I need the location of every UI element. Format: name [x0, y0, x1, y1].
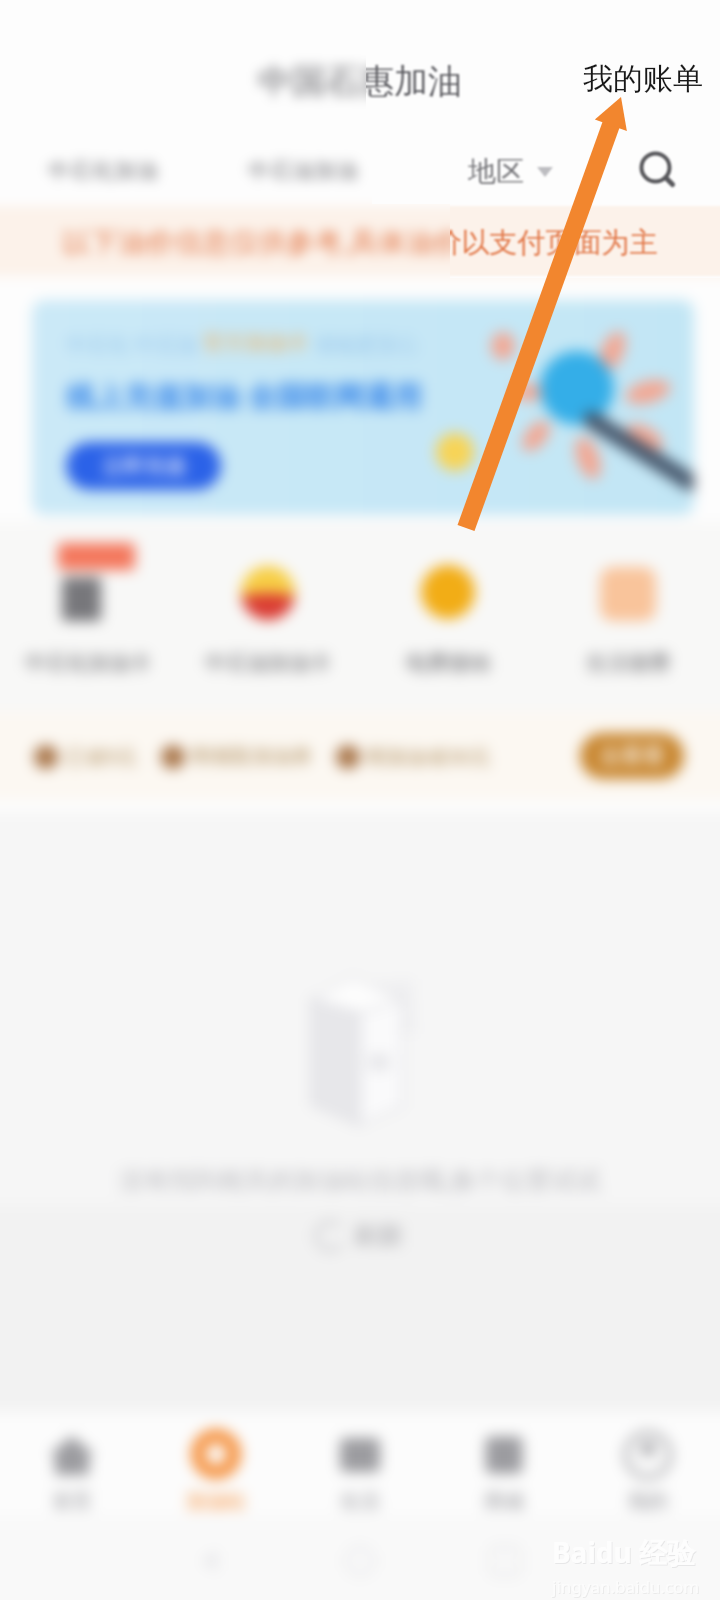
- staticText: 没有找到相关的加油站信息哦,换个位置试试: [119, 1162, 601, 1196]
- staticText: 官方加油卡: [203, 330, 308, 356]
- staticText: 立即充值: [102, 453, 186, 479]
- staticText: 中国石惠加油: [258, 60, 462, 103]
- button[interactable]: 中石化 中石油: [32, 300, 694, 515]
- button[interactable]: 商城: [432, 1412, 576, 1515]
- staticText: 线上充值加油 全国联网通用: [66, 376, 422, 416]
- staticText: 我的: [628, 1489, 668, 1514]
- staticText: 电费缴纳: [406, 650, 490, 676]
- button[interactable]: 电费缴纳: [368, 539, 528, 676]
- button[interactable]: 生活缴费: [548, 539, 708, 676]
- button[interactable]: 立即充值: [66, 442, 221, 490]
- staticText: 中国石惠加油: [258, 60, 366, 103]
- staticText: Baidu 经验: [552, 1533, 695, 1571]
- staticText: 已省9元: [65, 743, 137, 770]
- staticText: jingyan.baidu.com: [553, 1576, 701, 1599]
- button[interactable]: 中石油加油卡: [188, 539, 348, 676]
- button[interactable]: 中石化加油卡: [8, 539, 168, 676]
- staticText: 官方加油卡: [203, 330, 308, 356]
- button[interactable]: 刷新: [310, 1214, 410, 1257]
- staticText: 以下油价信息仅供参考,具体油价以支付页面为主: [62, 222, 450, 260]
- staticText: 电费缴纳: [406, 650, 490, 676]
- staticText: 生活: [340, 1489, 380, 1514]
- staticText: 首页: [52, 1489, 92, 1514]
- button[interactable]: 我的: [576, 1412, 720, 1515]
- staticText: 中石化加油卡: [25, 650, 151, 676]
- button[interactable]: 去看看: [580, 733, 684, 779]
- button[interactable]: 首页: [0, 1412, 144, 1515]
- button[interactable]: 加油站: [144, 1412, 288, 1515]
- staticText: 去看看: [599, 742, 665, 770]
- button[interactable]: 立即充值: [66, 442, 221, 490]
- button[interactable]: 加油站: [144, 1412, 288, 1515]
- staticText: 刷新: [354, 1220, 404, 1251]
- staticText: 生活缴费: [586, 650, 670, 676]
- staticText: 中石化加油卡: [25, 650, 151, 676]
- staticText: 加油站: [186, 1489, 246, 1514]
- button[interactable]: 生活: [288, 1412, 432, 1515]
- staticText: 线上充值加油 全国联网通用: [66, 376, 422, 416]
- button[interactable]: 中石油加油: [238, 147, 368, 195]
- button[interactable]: 中石化 中石油: [32, 300, 694, 515]
- button[interactable]: 去看看: [580, 733, 684, 779]
- staticText: 已省9元: [65, 743, 137, 770]
- staticText: 中石化 中石油: [66, 330, 203, 359]
- staticText: 以下油价信息仅供参考,具体油价以支付页面为主: [62, 222, 658, 260]
- staticText: 中石化 中石油: [66, 330, 203, 359]
- staticText: 我的账单: [583, 60, 703, 98]
- button[interactable]: 以下油价信息仅供参考,具体油价以支付页面为主: [0, 206, 450, 276]
- staticText: 中石化加油: [48, 157, 158, 185]
- staticText: 刚加油省30元: [367, 743, 490, 770]
- button[interactable]: 中石油加油: [238, 147, 368, 195]
- button[interactable]: 刷新: [310, 1214, 410, 1257]
- staticText: 刚加油省30元: [367, 743, 490, 770]
- staticText: 商城: [484, 1489, 524, 1514]
- staticText: 省钱更安心: [308, 330, 419, 359]
- button[interactable]: 首页: [0, 1412, 144, 1515]
- staticText: 刷新: [354, 1220, 404, 1251]
- staticText: 刚领取加油券: [192, 744, 312, 769]
- staticText: 生活: [340, 1489, 380, 1514]
- button[interactable]: 商城: [432, 1412, 576, 1515]
- staticText: 地区: [468, 154, 524, 189]
- button[interactable]: 中石化加油: [38, 147, 168, 195]
- staticText: 商城: [484, 1489, 524, 1514]
- staticText: 立即充值: [102, 453, 186, 479]
- button[interactable]: 中石化加油卡: [8, 539, 168, 676]
- button[interactable]: Search: [631, 143, 687, 199]
- staticText: 没有找到相关的加油站信息哦,换个位置试试: [119, 1162, 601, 1196]
- staticText: 中石油加油: [248, 157, 358, 185]
- staticText: 中石化加油: [48, 157, 158, 185]
- staticText: 首页: [52, 1489, 92, 1514]
- button[interactable]: 生活缴费: [548, 539, 708, 676]
- staticText: 刚领取加油券: [192, 744, 312, 769]
- button[interactable]: 中石油加油卡: [188, 539, 348, 676]
- staticText: Baidu 经验: [553, 1534, 696, 1572]
- staticText: 省钱更安心: [308, 330, 419, 359]
- staticText: jingyan.baidu.com: [552, 1575, 700, 1598]
- button[interactable]: 电费缴纳: [368, 539, 528, 676]
- button[interactable]: 中石化加油: [38, 147, 168, 195]
- button[interactable]: 以下油价信息仅供参考,具体油价以支付页面为主: [0, 206, 720, 276]
- button[interactable]: 地区: [462, 146, 559, 197]
- staticText: 中石油加油卡: [205, 650, 331, 676]
- staticText: 生活缴费: [586, 650, 670, 676]
- staticText: 中石油加油卡: [205, 650, 331, 676]
- staticText: 中石油加油: [248, 157, 358, 185]
- button[interactable]: 生活: [288, 1412, 432, 1515]
- button[interactable]: 我的: [576, 1412, 720, 1515]
- staticText: 去看看: [599, 742, 665, 770]
- staticText: 我的: [628, 1489, 668, 1514]
- staticText: 加油站: [186, 1489, 246, 1514]
